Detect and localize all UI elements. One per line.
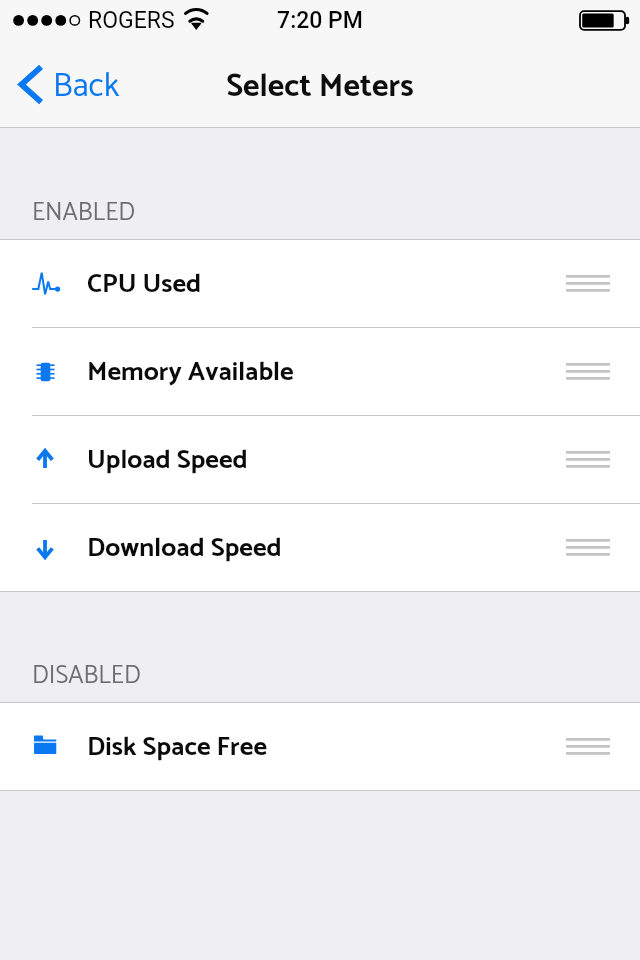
- staticText: ENABLED: [32, 192, 136, 233]
- staticText: CPU Used: [87, 263, 202, 306]
- staticText: Select Meters: [0, 61, 640, 113]
- button[interactable]: Reorder Memory Available: [536, 328, 640, 415]
- button[interactable]: Reorder CPU Used: [536, 240, 640, 327]
- button[interactable]: Memory Available: [0, 328, 640, 415]
- button[interactable]: Upload Speed: [0, 416, 640, 503]
- button[interactable]: Disk Space Free: [0, 703, 640, 790]
- staticText: Download Speed: [87, 527, 282, 570]
- staticText: Upload Speed: [87, 439, 248, 482]
- staticText: Disk Space Free: [87, 726, 268, 769]
- button[interactable]: Reorder Disk Space Free: [536, 703, 640, 790]
- staticText: 7:20 PM: [0, 7, 640, 34]
- button[interactable]: Download Speed: [0, 504, 640, 591]
- staticText: Memory Available: [87, 351, 294, 394]
- staticText: DISABLED: [32, 655, 141, 696]
- button[interactable]: Back: [0, 40, 136, 128]
- button[interactable]: Reorder Upload Speed: [536, 416, 640, 503]
- button[interactable]: Reorder Download Speed: [536, 504, 640, 591]
- button[interactable]: CPU Used: [0, 240, 640, 327]
- staticText: Back: [53, 60, 120, 114]
- staticText: ROGERS: [88, 7, 175, 34]
